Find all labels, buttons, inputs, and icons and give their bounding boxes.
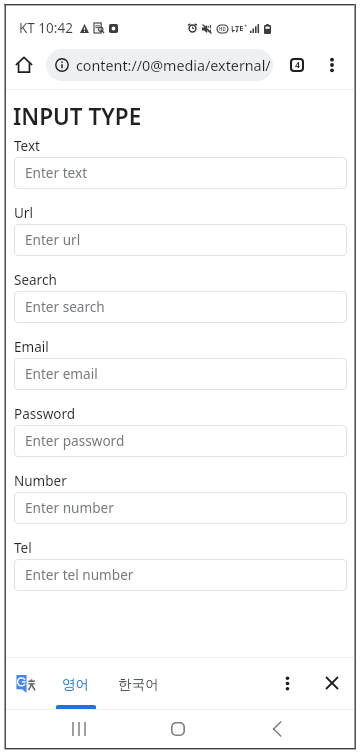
- button[interactable]: Recent apps: [62, 712, 96, 746]
- staticText: Enter number: [25, 498, 114, 517]
- button[interactable]: Enter url: [14, 224, 347, 256]
- button[interactable]: Enter text: [14, 157, 347, 189]
- button[interactable]: 영어: [61, 657, 91, 709]
- staticText: Enter search: [25, 297, 105, 316]
- button[interactable]: Home: [161, 712, 195, 746]
- staticText: 영어: [62, 676, 90, 693]
- button[interactable]: Back: [260, 712, 294, 746]
- staticText: INPUT TYPE: [13, 101, 142, 132]
- button[interactable]: More options: [317, 50, 347, 80]
- staticText: Enter password: [25, 431, 125, 450]
- staticText: content://0@media/external/: [76, 56, 271, 75]
- staticText: Email: [14, 338, 49, 356]
- button[interactable]: Enter email: [14, 358, 347, 390]
- staticText: Password: [14, 405, 76, 423]
- button[interactable]: Enter password: [14, 425, 347, 457]
- button[interactable]: Enter search: [14, 291, 347, 323]
- staticText: HD: [219, 26, 226, 32]
- button[interactable]: Enter number: [14, 492, 347, 524]
- button[interactable]: Tabs: [282, 50, 312, 80]
- button[interactable]: Enter tel number: [14, 559, 347, 591]
- button[interactable]: content://0@media/external/: [46, 49, 273, 81]
- staticText: Enter url: [25, 230, 81, 249]
- staticText: Number: [14, 472, 67, 490]
- staticText: Enter email: [25, 364, 98, 383]
- button[interactable]: More options: [269, 665, 305, 701]
- staticText: 한국어: [118, 676, 159, 693]
- staticText: Tel: [14, 539, 32, 557]
- staticText: Text: [14, 137, 40, 155]
- staticText: Search: [14, 271, 57, 289]
- button[interactable]: 한국어: [115, 657, 161, 709]
- staticText: KT 10:42: [19, 19, 73, 37]
- staticText: Enter text: [25, 163, 88, 182]
- staticText: Enter tel number: [25, 565, 134, 584]
- staticText: Url: [14, 204, 33, 222]
- staticText: 4: [295, 59, 300, 71]
- staticText: LTE: [231, 23, 244, 33]
- staticText: +: [244, 22, 248, 29]
- button[interactable]: Home: [8, 49, 40, 81]
- button[interactable]: Close: [314, 665, 350, 701]
